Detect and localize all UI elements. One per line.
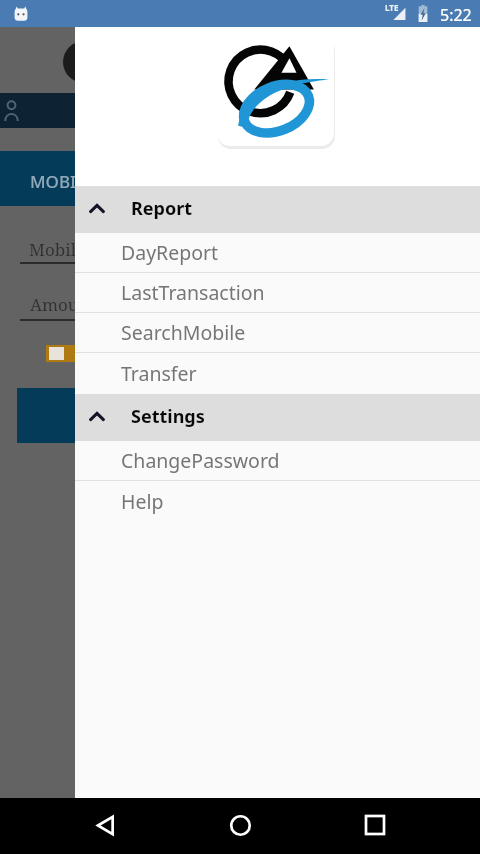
- button[interactable]: SearchMobile: [75, 313, 480, 352]
- button[interactable]: ChangePassword: [75, 441, 480, 480]
- staticText: Mobile Number: [29, 238, 157, 261]
- staticText: Report: [131, 196, 193, 221]
- button[interactable]: DayReport: [75, 233, 480, 272]
- button[interactable]: LastTransaction: [75, 273, 480, 312]
- button[interactable]: Transfer: [75, 353, 480, 394]
- button[interactable]: Settings: [75, 394, 480, 441]
- staticText: 5:22: [440, 4, 472, 26]
- button[interactable]: Help: [75, 481, 480, 522]
- staticText: LastTransaction: [121, 279, 265, 306]
- staticText: Amount: [30, 293, 96, 316]
- button[interactable]: Recent apps: [351, 801, 399, 849]
- staticText: Transfer: [121, 360, 197, 387]
- staticText: ChangePassword: [121, 447, 280, 474]
- staticText: Help: [121, 488, 164, 515]
- staticText: Settings: [131, 404, 205, 429]
- button[interactable]: Home: [216, 801, 264, 849]
- staticText: DayReport: [121, 239, 219, 266]
- staticText: LTE: [385, 2, 399, 13]
- button[interactable]: Back: [81, 801, 129, 849]
- staticText: SearchMobile: [121, 319, 246, 346]
- staticText: MOBILE RECHARGE: [30, 170, 187, 193]
- button[interactable]: Report: [75, 186, 480, 233]
